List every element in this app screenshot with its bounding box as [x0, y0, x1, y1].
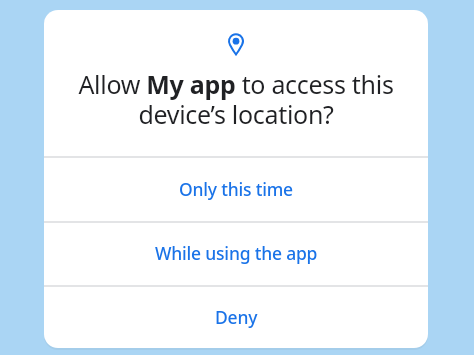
staticText: Deny	[215, 305, 258, 329]
staticText: Only this time	[179, 177, 293, 201]
button[interactable]: Deny	[44, 287, 428, 348]
button[interactable]: Only this time	[44, 158, 428, 221]
button[interactable]: While using the app	[44, 223, 428, 285]
staticText: While using the app	[155, 241, 318, 265]
staticText: Allow My app to access this device’s loc…	[44, 67, 428, 131]
